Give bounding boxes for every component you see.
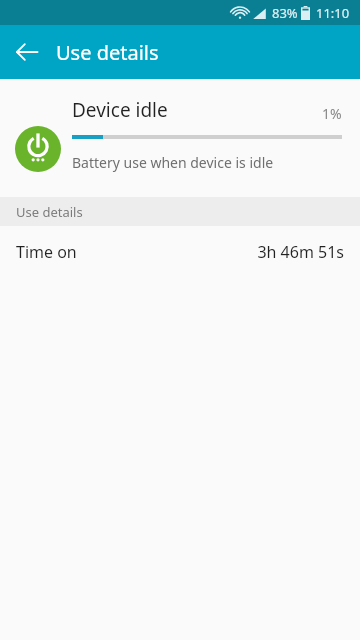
staticText: Device idle — [72, 97, 168, 123]
button[interactable]: Time on — [0, 226, 360, 278]
staticText: 3h 46m 51s — [257, 241, 344, 263]
staticText: 83% — [272, 4, 298, 22]
staticText: 1% — [322, 104, 342, 123]
staticText: 11:10 — [316, 4, 350, 22]
button[interactable]: Back — [0, 25, 54, 79]
staticText: Time on — [16, 241, 77, 263]
staticText: Use details — [16, 203, 83, 221]
staticText: Use details — [56, 39, 159, 66]
staticText: Battery use when device is idle — [72, 153, 274, 172]
